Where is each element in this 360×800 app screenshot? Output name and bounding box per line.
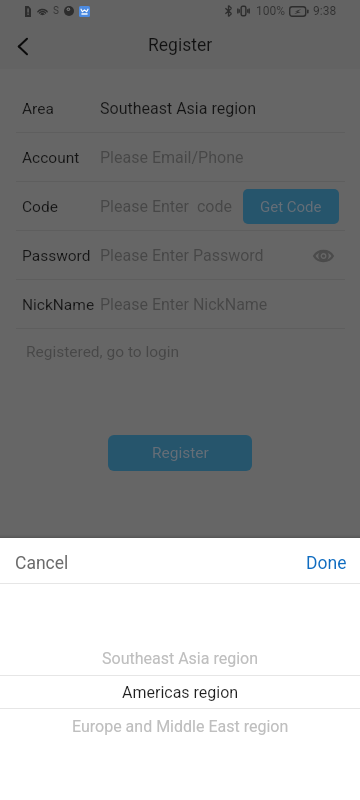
staticText: S (53, 5, 59, 17)
button[interactable]: Show password (308, 241, 338, 271)
staticText: Get Code (260, 198, 322, 216)
staticText: Europe and Middle East region (72, 717, 289, 736)
staticText: Area (22, 100, 54, 118)
staticText: NickName (22, 296, 95, 314)
button[interactable]: Get Code (243, 189, 339, 224)
button[interactable]: Area (0, 84, 360, 133)
staticText: Please Enter code (100, 197, 232, 216)
button[interactable]: Cancel (15, 553, 69, 574)
button[interactable]: Southeast Asia region (0, 641, 360, 675)
staticText: Register (148, 35, 213, 56)
button[interactable]: Americas region (0, 675, 360, 709)
staticText: Please Email/Phone (100, 148, 244, 167)
staticText: 9:38 (313, 4, 337, 18)
button[interactable]: Account (0, 133, 360, 182)
staticText: Southeast Asia region (100, 99, 256, 118)
staticText: Done (306, 553, 347, 574)
staticText: Cancel (15, 553, 69, 574)
staticText: Account (22, 149, 80, 167)
button[interactable]: Done (306, 553, 347, 574)
staticText: Please Enter Password (100, 246, 264, 265)
staticText: Americas region (122, 683, 239, 702)
button[interactable]: Registered, go to login (26, 343, 180, 361)
staticText: Southeast Asia region (102, 649, 258, 668)
staticText: Password (22, 247, 91, 265)
button[interactable]: Register (108, 435, 252, 471)
button[interactable]: Europe and Middle East region (0, 709, 360, 743)
button[interactable]: Back (0, 24, 44, 68)
staticText: Code (22, 198, 58, 216)
staticText: Please Enter NickName (100, 295, 268, 314)
staticText: 100% (256, 4, 286, 18)
staticText: Register (152, 444, 209, 462)
staticText: Registered, go to login (26, 343, 180, 361)
